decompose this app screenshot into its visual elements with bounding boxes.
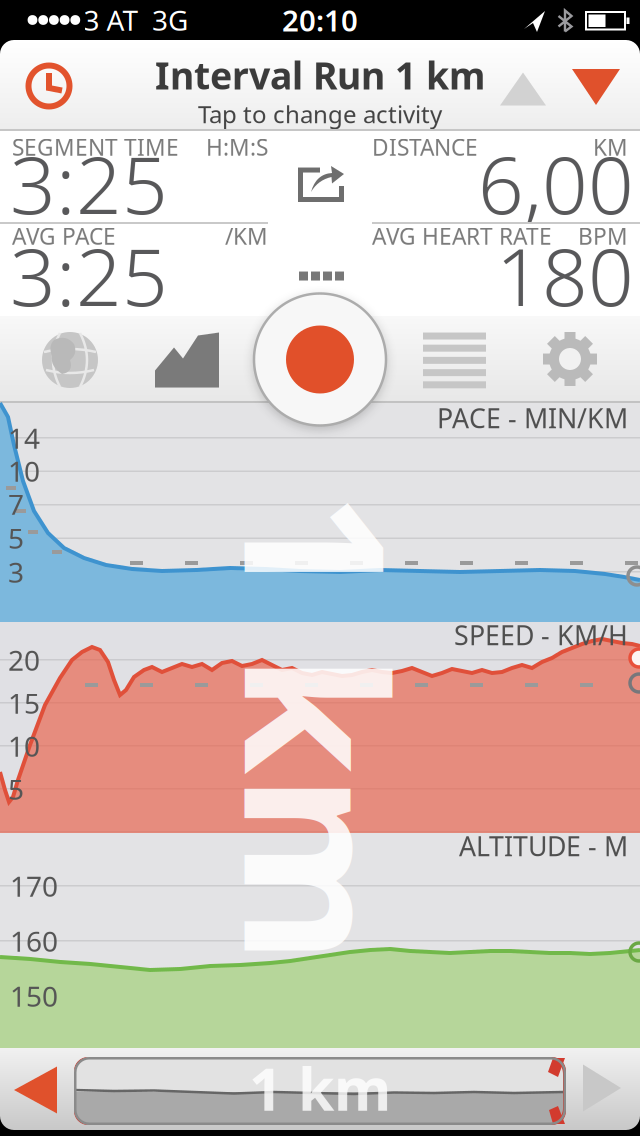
button[interactable]: Next activity — [572, 69, 620, 105]
staticText: 3G — [152, 1, 188, 39]
staticText: SEGMENT TIME — [12, 132, 179, 162]
button[interactable]: Charts — [155, 332, 219, 387]
button[interactable]: Settings — [541, 330, 599, 388]
staticText: Interval Run 1 km — [155, 50, 485, 100]
staticText: 3:25 — [10, 222, 168, 328]
staticText: 14 — [8, 419, 40, 457]
staticText: AVG HEART RATE — [372, 221, 552, 251]
staticText: 170 — [10, 867, 58, 905]
staticText: 15 — [8, 684, 40, 722]
button[interactable]: Previous activity — [500, 72, 546, 105]
staticText: BPM — [578, 221, 628, 251]
staticText: KM — [593, 132, 628, 162]
button[interactable]: 1 km — [74, 1057, 566, 1125]
staticText: 7 — [8, 485, 24, 523]
staticText: 1 km — [83, 599, 556, 857]
staticText: /KM — [225, 221, 268, 251]
staticText: 10 — [8, 727, 40, 765]
staticText: AVG PACE — [12, 221, 116, 251]
staticText: SPEED - KM/H — [454, 617, 628, 653]
button[interactable]: History — [25, 62, 73, 110]
button[interactable]: Previous segment — [14, 1066, 57, 1113]
staticText: 6,00 — [478, 130, 634, 236]
staticText: DISTANCE — [372, 132, 478, 162]
staticText: H:M:S — [206, 132, 268, 162]
button[interactable]: Next segment — [583, 1064, 621, 1111]
button[interactable]: Share — [298, 162, 346, 202]
staticText: 5 — [8, 519, 24, 557]
staticText: 20:10 — [282, 0, 358, 39]
staticText: 3:25 — [10, 130, 168, 236]
staticText: Tap to change activity — [198, 98, 442, 130]
staticText: 150 — [10, 977, 58, 1015]
staticText: 160 — [10, 922, 58, 960]
staticText: 1 km — [249, 1049, 391, 1127]
staticText: 3 — [8, 553, 24, 591]
staticText: 10 — [8, 452, 40, 490]
button[interactable]: Record — [253, 292, 387, 426]
staticText: ALTITUDE - M — [459, 828, 628, 864]
staticText: 180 — [496, 222, 634, 328]
staticText: 20 — [8, 641, 40, 679]
staticText: 5 — [8, 770, 24, 808]
staticText: PACE - MIN/KM — [437, 400, 628, 436]
button[interactable]: Interval Run 1 km — [140, 42, 500, 130]
button[interactable]: Map — [40, 330, 100, 390]
staticText: 3 AT — [83, 1, 138, 39]
button[interactable]: Details — [423, 332, 486, 388]
